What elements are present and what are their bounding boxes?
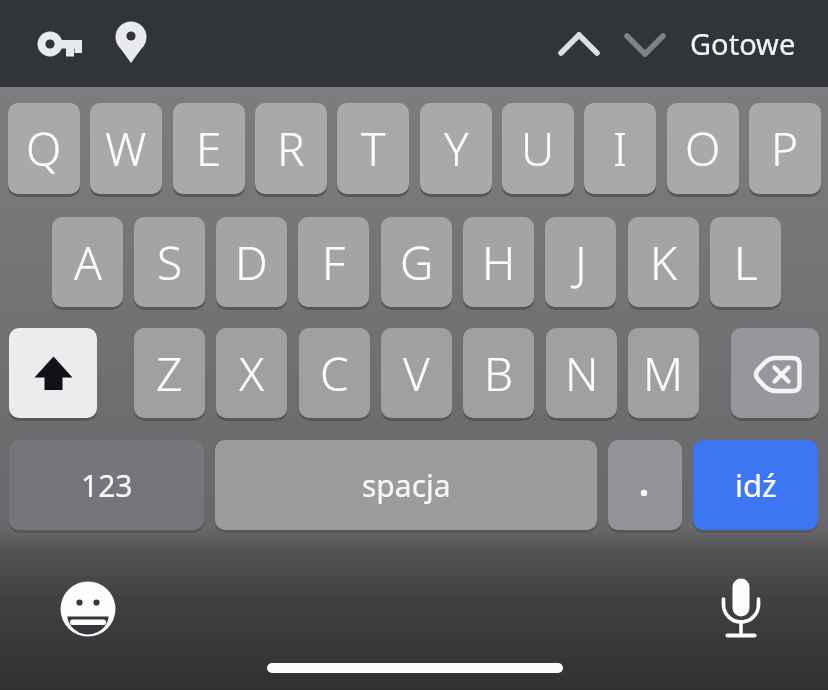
button[interactable]: K [628,217,699,307]
button[interactable]: H [463,217,534,307]
button[interactable]: R [255,103,327,194]
button[interactable]: 123 [9,440,204,530]
staticText: Y [444,117,469,180]
staticText: H [482,231,516,294]
button[interactable]: Z [134,328,205,418]
staticText: B [484,342,514,405]
button[interactable]: E [173,103,245,194]
button[interactable]: W [90,103,162,194]
button[interactable] [619,27,671,61]
button[interactable]: J [545,217,616,307]
button[interactable]: I [584,103,656,194]
button[interactable] [553,27,605,61]
staticText: P [771,117,799,180]
staticText: C [320,342,349,405]
button[interactable]: N [546,328,617,418]
button[interactable]: idź [693,440,818,530]
staticText: E [196,117,222,180]
button[interactable]: S [134,217,205,307]
button[interactable]: D [216,217,287,307]
button[interactable]: L [710,217,781,307]
button[interactable] [9,328,97,418]
button[interactable]: Gotowe [690,24,796,63]
staticText: idź [735,464,777,506]
button[interactable] [608,440,682,530]
button[interactable] [110,18,154,70]
staticText: Q [26,117,62,180]
staticText: J [575,231,587,294]
staticText: L [734,231,758,294]
button[interactable] [30,24,90,68]
button[interactable]: Q [8,103,80,194]
staticText: N [565,342,599,405]
button[interactable]: P [749,103,821,194]
button[interactable]: T [337,103,409,194]
button[interactable] [58,579,118,639]
button[interactable]: U [502,103,574,194]
staticText: K [650,231,678,294]
button[interactable]: B [463,328,534,418]
button[interactable] [712,575,770,639]
staticText: F [322,231,346,294]
button[interactable]: C [299,328,370,418]
staticText: T [361,117,386,180]
staticText: X [239,342,265,405]
button[interactable]: M [628,328,699,418]
staticText: Z [156,342,183,405]
button[interactable]: V [381,328,452,418]
button[interactable]: Y [420,103,492,194]
staticText: M [643,342,684,405]
button[interactable]: A [52,217,123,307]
button[interactable]: F [298,217,369,307]
staticText: R [277,117,305,180]
staticText: W [105,117,147,180]
staticText: I [613,117,628,180]
staticText: Gotowe [690,24,796,63]
staticText: D [235,231,268,294]
staticText: spacja [362,465,451,506]
staticText: U [521,117,555,180]
staticText: 123 [81,465,133,506]
button[interactable] [731,328,819,418]
button[interactable]: X [216,328,287,418]
button[interactable]: G [381,217,452,307]
button[interactable]: spacja [215,440,597,530]
button[interactable]: O [667,103,739,194]
staticText: G [400,231,434,294]
staticText: S [157,231,183,294]
staticText: A [74,231,102,294]
staticText: V [403,342,430,405]
staticText: O [685,117,721,180]
